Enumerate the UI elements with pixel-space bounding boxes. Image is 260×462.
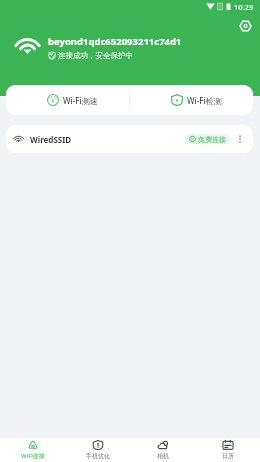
button[interactable]: Wi-Fi测速 bbox=[6, 85, 129, 115]
button[interactable]: 手机优化 bbox=[65, 438, 130, 462]
staticText: Wi-Fi测速 bbox=[63, 95, 98, 106]
staticText: WiredSSID bbox=[30, 134, 72, 145]
staticText: 连接成功，安全保护中 bbox=[58, 51, 133, 60]
staticText: 手机优化 bbox=[86, 452, 110, 460]
staticText: 10:29 bbox=[234, 2, 254, 12]
staticText: WiFi连接 bbox=[21, 452, 45, 460]
button[interactable]: Wi-Fi检测 bbox=[130, 85, 253, 115]
button[interactable]: 相机 bbox=[130, 438, 195, 462]
staticText: 相机 bbox=[157, 452, 169, 460]
button[interactable]: WiredSSID bbox=[6, 125, 253, 153]
button[interactable]: More options bbox=[234, 133, 246, 145]
button[interactable]: 日历 bbox=[195, 438, 260, 462]
button[interactable]: WiFi连接 bbox=[0, 438, 65, 462]
staticText: Wi-Fi检测 bbox=[187, 95, 222, 106]
button[interactable]: 免费连接 bbox=[189, 134, 226, 144]
button[interactable]: Settings bbox=[236, 17, 254, 35]
staticText: beyond1qdc652093211c74d1 bbox=[48, 35, 182, 48]
staticText: 日历 bbox=[222, 452, 234, 460]
staticText: 免费连接 bbox=[198, 135, 226, 144]
